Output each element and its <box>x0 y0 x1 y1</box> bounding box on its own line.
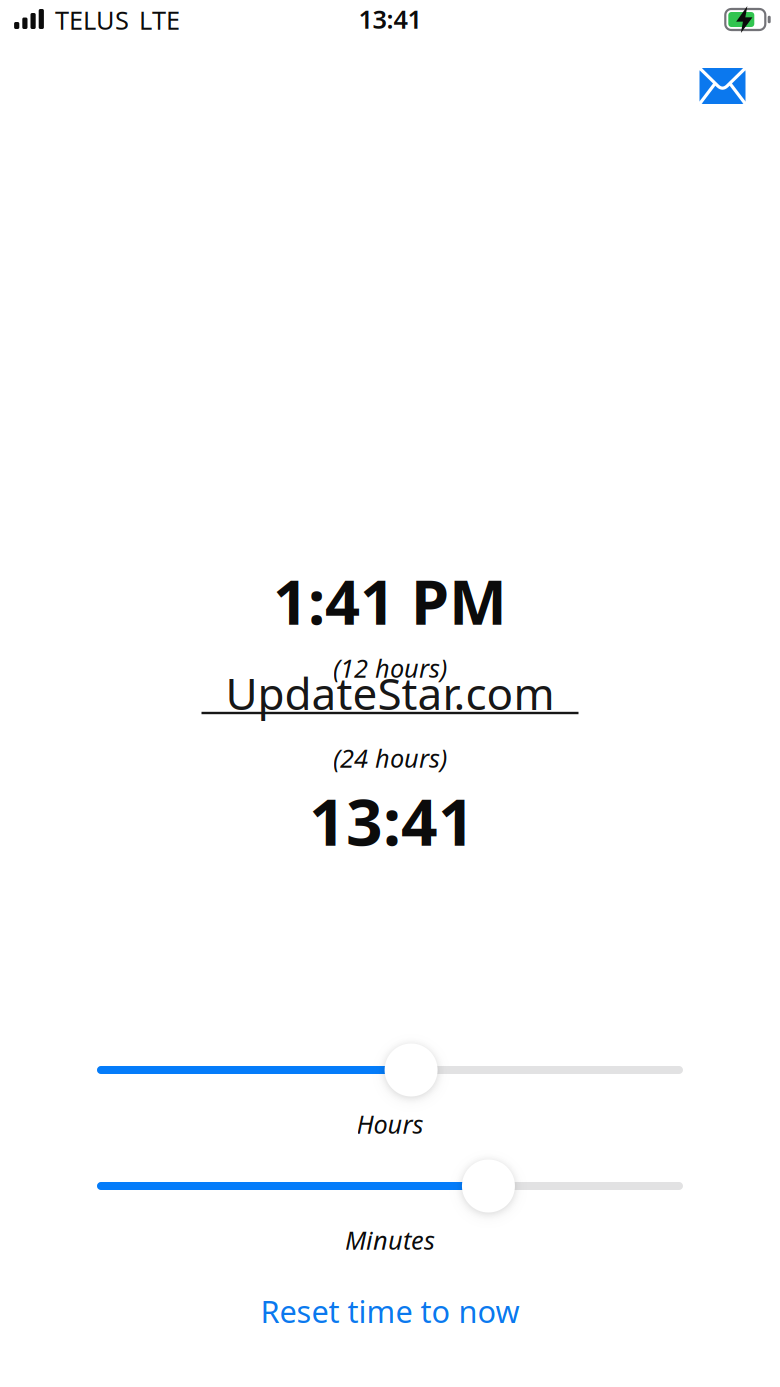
staticText: Reset time to now <box>260 1291 519 1331</box>
button[interactable]: Mail <box>681 52 763 120</box>
button[interactable]: Reset time to now <box>244 1279 535 1343</box>
staticText: Minutes <box>345 1223 435 1257</box>
button[interactable]: Minutes <box>97 1159 683 1212</box>
staticText: Hours <box>356 1107 423 1141</box>
staticText: 1:41 PM <box>273 560 507 642</box>
staticText: (12 hours) <box>333 651 447 685</box>
staticText: (24 hours) <box>333 741 447 775</box>
staticText: UpdateStar.com <box>225 664 554 722</box>
staticText: TELUS <box>55 3 129 37</box>
staticText: 13:41 <box>358 2 421 36</box>
staticText: LTE <box>139 3 180 37</box>
button[interactable]: Hours <box>97 1043 683 1096</box>
staticText: 13:41 <box>309 778 475 863</box>
